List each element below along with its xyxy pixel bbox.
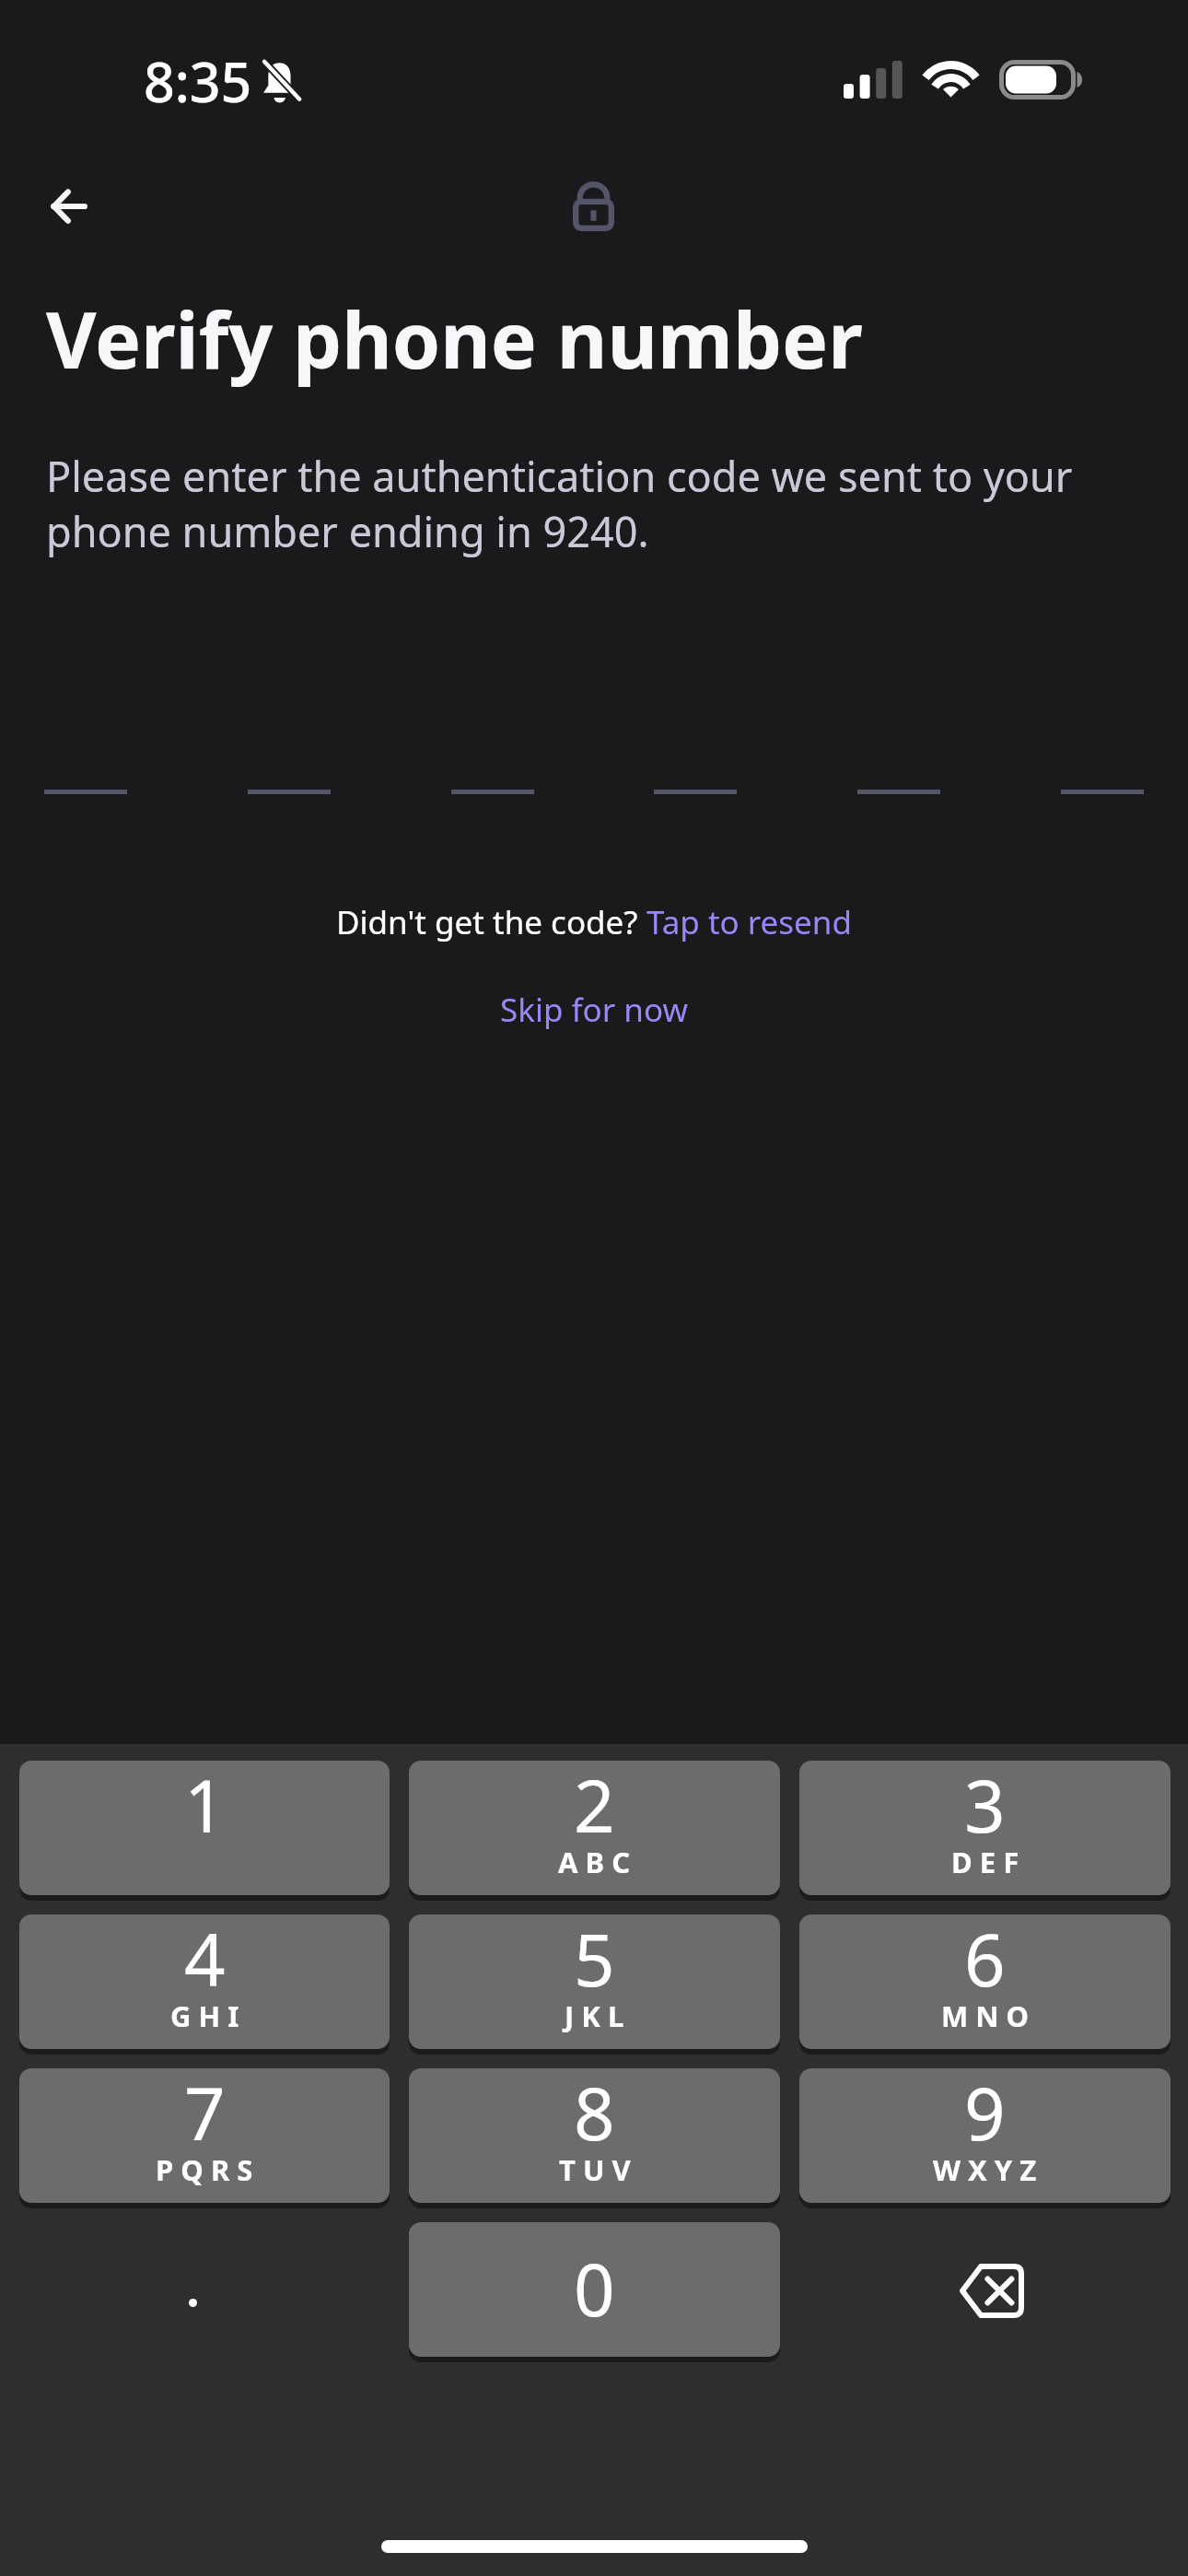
staticText: Verify phone number [46,286,863,391]
button[interactable]: 3 [799,1761,1171,1895]
button[interactable]: 0 [409,2222,780,2357]
staticText: 6 [964,1914,1006,2008]
button[interactable]: Dot [19,2222,390,2359]
staticText: Please enter the authentication code we … [46,448,1091,559]
button[interactable]: Skip for now [500,988,688,1032]
staticText: G H I [170,1996,239,2035]
button[interactable]: Backspace [799,2222,1171,2359]
button[interactable]: 1 [19,1761,390,1895]
staticText: 0 [574,2240,615,2337]
staticText: Tap to resend [646,900,852,944]
staticText: D E F [951,1843,1019,1881]
staticText: 7 [184,2068,226,2161]
staticText: J K L [565,1996,624,2035]
staticText: 8:35 [144,44,252,118]
staticText: Skip for now [500,988,688,1032]
staticText: 4 [184,1914,226,2008]
button[interactable]: 6 [799,1914,1171,2049]
button[interactable]: 8 [409,2068,780,2203]
staticText: M N O [941,1996,1030,2035]
staticText: Didn't get the code? [336,900,646,944]
staticText: 2 [574,1761,615,1854]
button[interactable]: Code digit [44,790,127,794]
button[interactable]: Code digit [857,790,940,794]
staticText: 3 [964,1761,1006,1854]
button[interactable]: 4 [19,1914,390,2049]
staticText: T U V [559,2150,631,2189]
staticText: 5 [574,1914,615,2008]
button[interactable]: 2 [409,1761,780,1895]
staticText: W X Y Z [933,2150,1037,2189]
staticText: A B C [558,1843,631,1881]
button[interactable]: 5 [409,1914,780,2049]
button[interactable]: Back [29,166,110,247]
staticText: 1 [184,1761,226,1854]
staticText: 8 [574,2068,615,2161]
button[interactable]: 9 [799,2068,1171,2203]
button[interactable]: Code digit [451,790,534,794]
button[interactable]: 7 [19,2068,390,2203]
button[interactable]: Tap to resend [646,900,852,944]
staticText: 9 [964,2068,1006,2161]
staticText: P Q R S [156,2150,253,2189]
